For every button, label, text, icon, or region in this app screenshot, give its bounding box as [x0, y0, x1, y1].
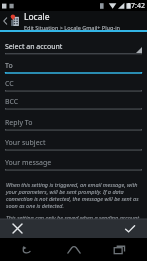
staticText: To [5, 61, 13, 71]
button[interactable]: Select an account [0, 40, 147, 55]
staticText: Reply To [5, 118, 33, 128]
button[interactable]: CC [0, 77, 147, 95]
staticText: BCC [5, 97, 19, 107]
other: Navigate up [2, 15, 8, 27]
button[interactable]: Reply To [0, 116, 147, 134]
button[interactable]: BCC [0, 95, 147, 113]
button[interactable]: Done [113, 219, 147, 238]
staticText: When this setting is triggered, an email… [6, 181, 141, 209]
staticText: Your subject [5, 138, 46, 148]
button[interactable]: To [0, 59, 147, 77]
button[interactable]: Cancel [0, 219, 34, 238]
button[interactable]: Home [56, 238, 92, 261]
staticText: Locale [24, 11, 50, 23]
button[interactable]: Back [10, 238, 46, 261]
staticText: CC [5, 79, 14, 89]
staticText: This setting can only be saved when a se… [6, 214, 141, 219]
staticText: 17:42 [127, 1, 145, 11]
button[interactable]: Recent apps [101, 238, 137, 261]
button[interactable]: Navigate up [0, 11, 147, 30]
staticText: Edit Situation > Locale Gmail+ Plug-in [24, 24, 120, 30]
button[interactable]: Your message [0, 156, 147, 174]
staticText: Your message [5, 158, 52, 168]
staticText: Select an account [5, 42, 63, 52]
button[interactable]: Your subject [0, 136, 147, 154]
